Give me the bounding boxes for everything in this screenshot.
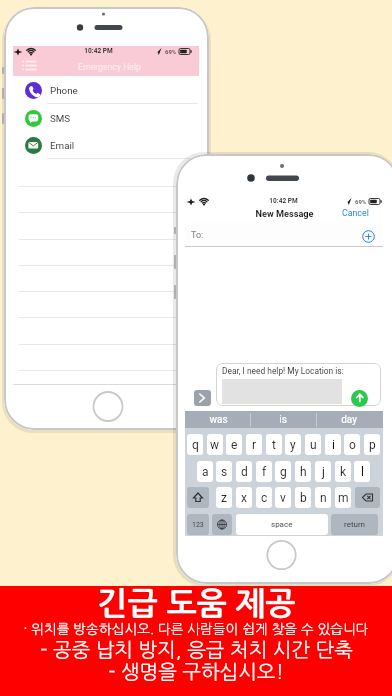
staticText: v bbox=[280, 491, 286, 505]
staticText: i bbox=[332, 438, 335, 452]
button[interactable] bbox=[187, 487, 209, 508]
button[interactable]: i bbox=[325, 434, 341, 455]
staticText: Dear, I need help! My Location is: bbox=[222, 366, 344, 376]
staticText: p bbox=[369, 438, 376, 452]
button[interactable]: x bbox=[236, 487, 252, 508]
staticText: To: bbox=[191, 230, 204, 241]
button[interactable] bbox=[194, 390, 211, 406]
staticText: h bbox=[300, 465, 307, 479]
button[interactable]: w bbox=[207, 434, 223, 455]
button[interactable]: y bbox=[285, 434, 301, 455]
button[interactable]: Phone bbox=[13, 76, 199, 104]
staticText: r bbox=[252, 438, 257, 452]
staticText: t bbox=[272, 438, 276, 452]
button[interactable]: h bbox=[295, 461, 311, 482]
button[interactable]: m bbox=[335, 487, 351, 508]
button[interactable]: k bbox=[335, 461, 351, 482]
button[interactable]: Email bbox=[13, 131, 199, 159]
button[interactable]: q bbox=[187, 434, 203, 455]
staticText: Email bbox=[50, 140, 75, 151]
staticText: b bbox=[300, 491, 307, 505]
button[interactable]: b bbox=[295, 487, 311, 508]
staticText: w bbox=[210, 438, 220, 452]
staticText: z bbox=[221, 491, 227, 505]
staticText: · 위치를 방송하십시오. 다른 사람들이 쉽게 찾을 수 있습니다 bbox=[23, 622, 369, 636]
staticText: d bbox=[241, 465, 248, 479]
button[interactable]: j bbox=[315, 461, 331, 482]
staticText: m bbox=[338, 491, 349, 505]
button[interactable]: d bbox=[236, 461, 252, 482]
staticText: j bbox=[322, 465, 325, 479]
button[interactable]: z bbox=[216, 487, 232, 508]
button[interactable]: s bbox=[216, 461, 232, 482]
button[interactable]: n bbox=[315, 487, 331, 508]
staticText: l bbox=[361, 465, 364, 479]
staticText: s bbox=[221, 465, 228, 479]
staticText: - 생명을 구하십시오! bbox=[108, 662, 284, 682]
button[interactable] bbox=[212, 514, 232, 535]
staticText: x bbox=[241, 491, 247, 505]
button[interactable]: l bbox=[354, 461, 370, 482]
staticText: was bbox=[209, 414, 228, 426]
staticText: return bbox=[344, 520, 366, 529]
button[interactable]: t bbox=[266, 434, 282, 455]
button[interactable]: o bbox=[344, 434, 360, 455]
staticText: q bbox=[192, 438, 199, 452]
button[interactable] bbox=[13, 46, 199, 76]
button[interactable]: g bbox=[275, 461, 291, 482]
button[interactable]: u bbox=[305, 434, 321, 455]
staticText: day bbox=[341, 414, 357, 426]
button[interactable]: space bbox=[236, 514, 328, 535]
button[interactable]: return bbox=[331, 514, 378, 535]
button[interactable]: p bbox=[364, 434, 380, 455]
button[interactable]: f bbox=[256, 461, 272, 482]
staticText: 69% bbox=[165, 48, 177, 55]
staticText: 123 bbox=[192, 521, 204, 529]
staticText: o bbox=[349, 438, 356, 452]
button[interactable]: SMS bbox=[13, 104, 199, 132]
button[interactable]: v bbox=[275, 487, 291, 508]
button[interactable] bbox=[355, 487, 380, 508]
staticText: - 공중 납치 방지, 응급 처치 시간 단축 bbox=[40, 640, 353, 660]
staticText: 긴급 도움 제공 bbox=[97, 588, 296, 620]
button[interactable]: e bbox=[226, 434, 242, 455]
staticText: Emergency Help bbox=[78, 62, 141, 72]
button[interactable] bbox=[185, 223, 383, 246]
staticText: n bbox=[320, 491, 327, 505]
staticText: 10:42 PM bbox=[84, 47, 113, 55]
button[interactable]: Cancel bbox=[338, 204, 372, 222]
staticText: k bbox=[340, 465, 347, 479]
staticText: c bbox=[261, 491, 268, 505]
staticText: e bbox=[231, 438, 238, 452]
staticText: f bbox=[262, 465, 267, 479]
staticText: SMS bbox=[50, 113, 71, 124]
staticText: 69% bbox=[355, 198, 367, 205]
staticText: 10:42 PM bbox=[269, 197, 298, 205]
staticText: space bbox=[271, 520, 293, 529]
button[interactable]: r bbox=[246, 434, 262, 455]
staticText: y bbox=[290, 438, 296, 452]
staticText: u bbox=[310, 438, 317, 452]
staticText: Cancel bbox=[342, 208, 369, 218]
staticText: is bbox=[279, 414, 287, 426]
staticText: g bbox=[280, 465, 287, 479]
button[interactable]: a bbox=[197, 461, 213, 482]
staticText: Phone bbox=[50, 85, 78, 96]
button[interactable] bbox=[351, 390, 368, 407]
button[interactable]: 123 bbox=[187, 514, 209, 535]
staticText: New Message bbox=[255, 208, 314, 219]
staticText: a bbox=[202, 465, 209, 479]
button[interactable]: c bbox=[256, 487, 272, 508]
